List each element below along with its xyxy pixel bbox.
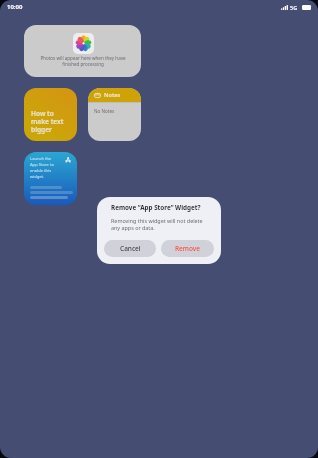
staticText: Photos will appear here when they have f… [36,55,130,67]
staticText: Launch the App Store to enable this widg… [30,156,56,180]
button[interactable]: Cancel [104,240,156,257]
button[interactable]: How to make text bigger [24,88,77,141]
staticText: No Notes [94,108,115,114]
staticText: How to make text bigger [31,109,64,134]
staticText: Remove “App Store” Widget? [111,203,201,212]
other: App Store [65,157,71,163]
button[interactable]: Notes [88,88,141,141]
staticText: 5G [290,4,298,11]
staticText: 10:00 [7,3,23,11]
button[interactable]: Photos will appear here when they have f… [24,25,141,77]
button[interactable]: Launch the App Store to enable this widg… [24,152,77,205]
staticText: Notes [104,91,121,99]
staticText: Removing this widget will not delete any… [111,217,207,231]
button[interactable]: Remove [161,240,214,257]
staticText: Cancel [120,244,141,253]
staticText: Remove [175,244,200,253]
